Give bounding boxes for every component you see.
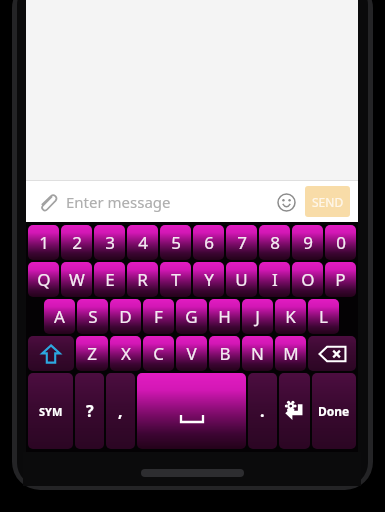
staticText: I (272, 268, 278, 291)
staticText: U (235, 268, 248, 291)
button[interactable]: 0 (325, 225, 356, 260)
button[interactable]: 2 (61, 225, 92, 260)
staticText: 5 (171, 231, 181, 254)
staticText: C (153, 342, 164, 365)
button[interactable]: Attach file (34, 189, 60, 215)
staticText: 7 (237, 231, 247, 254)
staticText: N (251, 342, 264, 365)
staticText: T (171, 268, 181, 291)
staticText: G (185, 305, 198, 328)
staticText: 8 (270, 231, 280, 254)
button[interactable]: Y (193, 262, 224, 297)
button[interactable]: S (77, 299, 108, 334)
button[interactable]: Shift (28, 336, 74, 371)
staticText: B (219, 342, 231, 365)
staticText: F (154, 305, 163, 328)
button[interactable]: Done (312, 373, 356, 449)
button[interactable]: SEND (305, 186, 350, 217)
staticText: O (301, 268, 315, 291)
staticText: 0 (336, 231, 346, 254)
button[interactable]: 1 (28, 225, 59, 260)
button[interactable]: F (143, 299, 174, 334)
button[interactable]: G (176, 299, 207, 334)
button[interactable]: Backspace (308, 336, 356, 371)
staticText: 6 (204, 231, 214, 254)
button[interactable]: 3 (94, 225, 125, 260)
staticText: K (285, 305, 296, 328)
button[interactable]: . (248, 373, 277, 449)
staticText: 4 (138, 231, 148, 254)
staticText: H (218, 305, 231, 328)
staticText: Q (37, 268, 51, 291)
button[interactable]: 8 (259, 225, 290, 260)
button[interactable]: Emoji (272, 188, 300, 216)
staticText: , (118, 400, 123, 422)
button[interactable]: Space (137, 373, 246, 449)
staticText: M (283, 342, 299, 365)
button[interactable]: A (44, 299, 75, 334)
staticText: R (137, 268, 148, 291)
button[interactable]: Z (76, 336, 108, 371)
button[interactable]: Enter (279, 373, 310, 449)
staticText: Y (204, 268, 214, 291)
staticText: D (119, 305, 132, 328)
staticText: Done (318, 403, 350, 419)
staticText: . (260, 400, 265, 422)
button[interactable]: D (110, 299, 141, 334)
staticText: 9 (303, 231, 313, 254)
staticText: W (69, 268, 85, 291)
button[interactable]: , (106, 373, 135, 449)
button[interactable]: W (61, 262, 92, 297)
button[interactable]: J (242, 299, 273, 334)
button[interactable]: SYM (28, 373, 73, 449)
staticText: A (54, 305, 65, 328)
staticText: X (121, 342, 131, 365)
staticText: S (88, 305, 98, 328)
staticText: J (255, 305, 260, 328)
button[interactable]: Q (28, 262, 59, 297)
button[interactable]: X (110, 336, 141, 371)
staticText: 1 (39, 231, 49, 254)
staticText: SEND (312, 194, 344, 210)
button[interactable]: 7 (226, 225, 257, 260)
button[interactable]: O (292, 262, 323, 297)
button[interactable]: 6 (193, 225, 224, 260)
button[interactable]: K (275, 299, 306, 334)
button[interactable]: 4 (127, 225, 158, 260)
button[interactable]: V (176, 336, 207, 371)
button[interactable]: N (242, 336, 273, 371)
staticText: Enter message (66, 192, 272, 212)
button[interactable]: 5 (160, 225, 191, 260)
button[interactable]: M (275, 336, 306, 371)
staticText: ? (86, 400, 94, 422)
button[interactable]: 9 (292, 225, 323, 260)
staticText: SYM (39, 404, 63, 419)
button[interactable]: R (127, 262, 158, 297)
button[interactable]: B (209, 336, 240, 371)
button[interactable]: H (209, 299, 240, 334)
staticText: P (335, 268, 346, 291)
button[interactable]: E (94, 262, 125, 297)
staticText: Z (87, 342, 97, 365)
staticText: 2 (72, 231, 82, 254)
staticText: V (186, 342, 197, 365)
button[interactable]: L (308, 299, 339, 334)
button[interactable]: ? (75, 373, 104, 449)
button[interactable]: P (325, 262, 356, 297)
staticText: E (105, 268, 115, 291)
staticText: L (319, 305, 328, 328)
button[interactable]: U (226, 262, 257, 297)
button[interactable]: C (143, 336, 174, 371)
staticText: 3 (105, 231, 115, 254)
button[interactable]: T (160, 262, 191, 297)
button[interactable]: I (259, 262, 290, 297)
